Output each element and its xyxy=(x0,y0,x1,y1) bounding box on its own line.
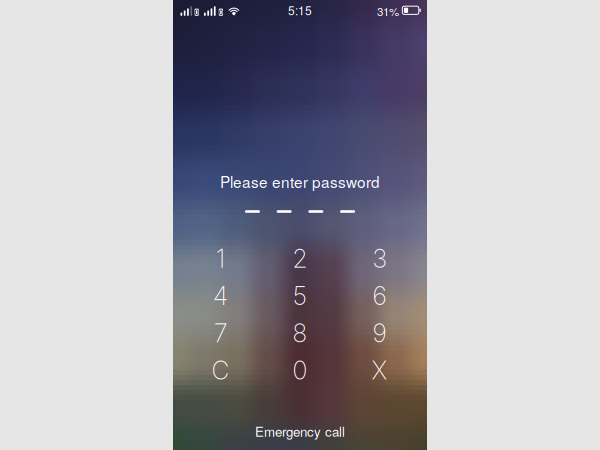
staticText: 8 xyxy=(292,318,307,348)
button[interactable]: 6 xyxy=(340,277,419,315)
staticText: Emergency call xyxy=(255,421,345,441)
staticText: 9 xyxy=(372,318,386,348)
staticText: 31% xyxy=(377,3,399,19)
staticText: C xyxy=(211,355,229,385)
staticText: 7 xyxy=(214,318,227,348)
button[interactable]: C xyxy=(181,352,260,389)
button[interactable]: 9 xyxy=(340,315,419,352)
button[interactable]: X xyxy=(340,352,419,389)
button[interactable]: Emergency call xyxy=(235,422,365,440)
button[interactable]: 4 xyxy=(181,277,260,315)
staticText: Please enter password xyxy=(220,170,380,192)
staticText: 2 xyxy=(292,244,307,274)
button[interactable]: 8 xyxy=(260,315,340,352)
staticText: 6 xyxy=(372,281,386,311)
button[interactable]: 5 xyxy=(260,277,340,315)
staticText: 5 xyxy=(293,281,307,311)
button[interactable]: 0 xyxy=(260,352,340,389)
staticText: 1 xyxy=(216,244,225,274)
staticText: X xyxy=(371,355,387,385)
staticText: 3 xyxy=(372,244,386,274)
button[interactable]: 1 xyxy=(181,240,260,277)
staticText: 4 xyxy=(213,281,228,311)
button[interactable]: 3 xyxy=(340,240,419,277)
staticText: 0 xyxy=(292,355,307,385)
button[interactable]: 2 xyxy=(260,240,340,277)
button[interactable]: 7 xyxy=(181,315,260,352)
staticText: 5:15 xyxy=(288,1,312,19)
